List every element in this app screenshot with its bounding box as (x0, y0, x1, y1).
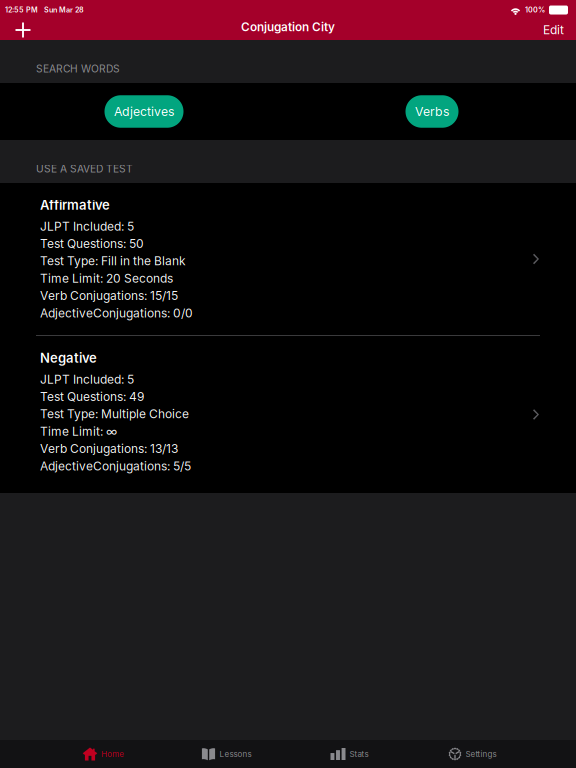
button[interactable]: Adjectives (104, 95, 183, 128)
staticText: Lessons (219, 749, 251, 759)
staticText: Verb Conjugations: 15/15 (40, 288, 178, 303)
staticText: JLPT Included: 5 (40, 219, 134, 233)
button[interactable]: Settings (411, 740, 534, 768)
button[interactable]: Verbs (405, 95, 458, 128)
staticText: Adjectives (114, 104, 174, 119)
staticText: Test Questions: 50 (40, 236, 144, 251)
staticText: Edit (543, 23, 564, 37)
staticText: AdjectiveConjugations: 5/5 (40, 459, 191, 473)
button[interactable]: Stats (288, 740, 411, 768)
staticText: Verbs (415, 104, 449, 119)
staticText: Test Questions: 49 (40, 389, 144, 404)
staticText: 12:55 PM (5, 6, 38, 14)
button[interactable]: Affirmative (0, 183, 576, 335)
button[interactable]: Add (3, 20, 43, 40)
button[interactable]: Negative (0, 336, 576, 493)
staticText: JLPT Included: 5 (40, 372, 134, 386)
staticText: Home (101, 749, 124, 759)
staticText: SEARCH WORDS (36, 63, 120, 75)
button[interactable]: Home (42, 740, 165, 768)
staticText: USE A SAVED TEST (36, 163, 133, 175)
staticText: AdjectiveConjugations: 0/0 (40, 306, 193, 320)
staticText: Negative (40, 350, 97, 366)
staticText: Settings (465, 749, 496, 759)
staticText: Conjugation City (241, 20, 335, 34)
staticText: Affirmative (40, 197, 110, 213)
staticText: Time Limit: ∞ (40, 424, 117, 439)
staticText: Sun Mar 28 (38, 6, 84, 14)
staticText: Stats (349, 749, 368, 759)
staticText: Time Limit: 20 Seconds (40, 271, 173, 286)
button[interactable]: Lessons (165, 740, 288, 768)
staticText: Verb Conjugations: 13/13 (40, 441, 178, 456)
staticText: 100% (521, 6, 549, 14)
button[interactable]: Edit (520, 20, 564, 40)
staticText: Test Type: Fill in the Blank (40, 254, 186, 268)
staticText: Test Type: Multiple Choice (40, 407, 189, 421)
